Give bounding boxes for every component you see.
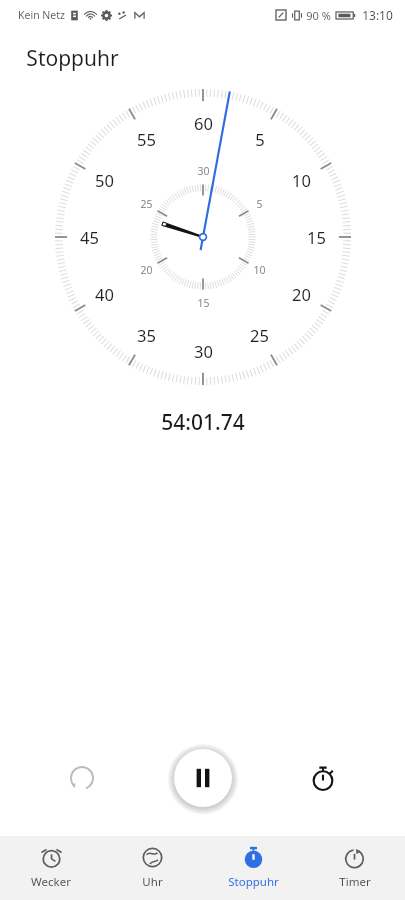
staticText: 25 [140,197,153,211]
staticText: 40 [95,283,114,305]
staticText: 15 [307,226,326,248]
staticText: 25 [250,324,269,346]
button[interactable]: Runde [295,750,351,806]
staticText: 5 [256,197,263,211]
staticText: 45 [80,226,99,248]
staticText: 20 [140,263,153,277]
staticText: Kein Netz [18,8,65,22]
button[interactable]: Timer [304,836,405,900]
button[interactable]: Uhr [102,836,203,900]
staticText: 30 [197,164,210,178]
button[interactable]: Stoppuhr [203,836,304,900]
staticText: 54:01.74 [161,408,245,437]
staticText: 5 [255,128,265,150]
staticText: 50 [95,169,114,191]
staticText: 55 [137,128,156,150]
staticText: 13:10 [362,7,393,23]
staticText: Stoppuhr [228,874,279,890]
staticText: Stoppuhr [26,44,119,73]
staticText: 90 % [306,8,331,23]
staticText: 15 [197,296,210,310]
button[interactable]: Wecker [0,836,102,900]
staticText: Timer [339,874,371,890]
staticText: Wecker [31,874,71,890]
staticText: 10 [253,263,266,277]
staticText: 10 [292,169,311,191]
staticText: 20 [292,283,311,305]
button[interactable]: Zurücksetzen [54,750,110,806]
staticText: 60 [194,112,213,134]
staticText: 30 [194,340,213,362]
staticText: 35 [137,324,156,346]
staticText: Uhr [142,874,163,890]
button[interactable]: Pause [174,749,232,807]
